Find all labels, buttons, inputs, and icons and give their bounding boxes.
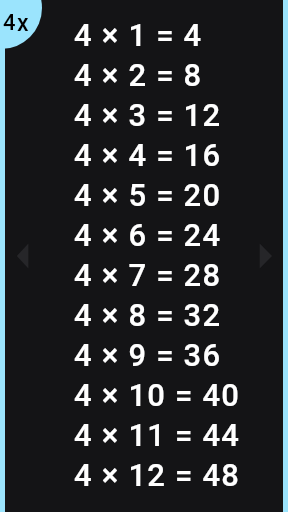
staticText: 4 × 8 = 32	[74, 297, 222, 333]
staticText: 4 × 12 = 48	[74, 457, 241, 493]
button[interactable]: 4 × 1 = 4	[74, 17, 254, 57]
button[interactable]: 4 × 11 = 44	[74, 417, 254, 457]
button[interactable]: 4 × 7 = 28	[74, 257, 254, 297]
staticText: 4 × 7 = 28	[74, 257, 222, 293]
button[interactable]: 4 × 10 = 40	[74, 377, 254, 417]
staticText: 4 × 4 = 16	[74, 137, 222, 173]
staticText: 4 × 3 = 12	[74, 97, 222, 133]
staticText: 4 × 11 = 44	[74, 417, 241, 453]
staticText: x	[17, 10, 29, 37]
staticText: 4	[3, 10, 16, 36]
button[interactable]: 4 × 3 = 12	[74, 97, 254, 137]
button[interactable]: 4 × 8 = 32	[74, 297, 254, 337]
button[interactable]: 4 × 12 = 48	[74, 457, 254, 497]
button[interactable]: 4 × 9 = 36	[74, 337, 254, 377]
button[interactable]: 4 × 2 = 8	[74, 57, 254, 97]
button[interactable]: 4 × 4 = 16	[74, 137, 254, 177]
button[interactable]: Previous times table	[8, 224, 36, 288]
button[interactable]: Choose times table	[0, 0, 46, 52]
button[interactable]: 4 × 6 = 24	[74, 217, 254, 257]
staticText: 4 × 10 = 40	[74, 377, 241, 413]
staticText: 4 × 6 = 24	[74, 217, 222, 253]
button[interactable]: Next times table	[252, 224, 280, 288]
staticText: 4 × 2 = 8	[74, 57, 203, 93]
button[interactable]: 4 × 5 = 20	[74, 177, 254, 217]
staticText: 4 × 5 = 20	[74, 177, 222, 213]
staticText: 4 × 1 = 4	[74, 17, 203, 53]
staticText: 4 × 9 = 36	[74, 337, 222, 373]
